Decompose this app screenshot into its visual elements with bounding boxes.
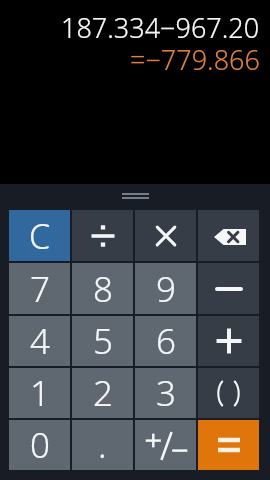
- button[interactable]: 5: [72, 316, 133, 366]
- button[interactable]: Plus: [198, 316, 259, 366]
- staticText: 3: [156, 369, 176, 417]
- button[interactable]: Divide: [72, 210, 133, 261]
- staticText: 9: [156, 265, 176, 313]
- staticText: 8: [93, 265, 113, 313]
- button[interactable]: Equals: [198, 420, 259, 470]
- staticText: =−779.866: [130, 41, 260, 78]
- button[interactable]: Multiply: [135, 210, 196, 261]
- staticText: .: [98, 421, 107, 469]
- button[interactable]: 2: [72, 368, 133, 418]
- staticText: 6: [156, 317, 176, 365]
- staticText: 5: [93, 317, 113, 365]
- button[interactable]: 4: [9, 316, 70, 366]
- button[interactable]: Minus: [198, 263, 259, 314]
- button[interactable]: 7: [9, 263, 70, 314]
- staticText: 187.334−967.20: [61, 9, 260, 46]
- button[interactable]: 6: [135, 316, 196, 366]
- button[interactable]: .: [72, 420, 133, 470]
- button[interactable]: Clear: [9, 210, 70, 261]
- button[interactable]: 3: [135, 368, 196, 418]
- staticText: C: [29, 213, 51, 259]
- button[interactable]: Backspace: [198, 210, 259, 261]
- button[interactable]: 8: [72, 263, 133, 314]
- button[interactable]: Plus minus: [135, 420, 196, 470]
- button[interactable]: 0: [9, 420, 70, 470]
- staticText: 2: [93, 369, 113, 417]
- staticText: 7: [30, 265, 50, 313]
- button[interactable]: 9: [135, 263, 196, 314]
- staticText: 4: [30, 317, 50, 365]
- button[interactable]: 1: [9, 368, 70, 418]
- button[interactable]: Parentheses: [198, 368, 259, 418]
- staticText: 0: [30, 421, 50, 469]
- staticText: 1: [30, 369, 50, 417]
